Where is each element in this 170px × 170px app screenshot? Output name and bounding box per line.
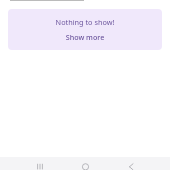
- staticText: Show more: [8, 32, 162, 42]
- button[interactable]: Recents: [34, 157, 46, 170]
- staticText: Nothing to show!: [8, 17, 162, 27]
- button[interactable]: Nothing to show!: [8, 9, 162, 50]
- button[interactable]: Back: [125, 157, 137, 170]
- button[interactable]: Home: [79, 157, 91, 170]
